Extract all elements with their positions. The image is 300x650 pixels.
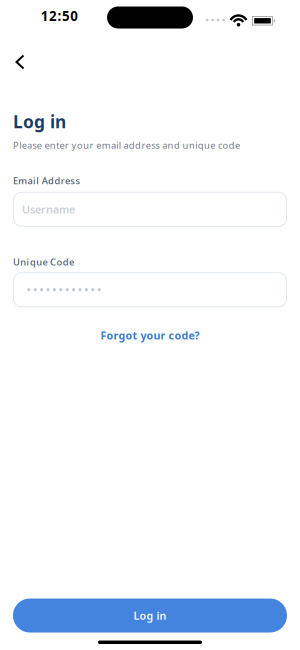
staticText: Log in bbox=[13, 110, 66, 133]
button[interactable]: Back bbox=[0, 44, 40, 80]
staticText: 12:50 bbox=[41, 7, 78, 25]
staticText: Unique Code bbox=[13, 256, 74, 268]
staticText: Email Address bbox=[13, 174, 81, 187]
staticText: Please enter your email address and uniq… bbox=[13, 139, 240, 151]
staticText: Log in bbox=[133, 608, 166, 623]
staticText: Username bbox=[22, 202, 75, 216]
button[interactable]: Forgot your code? bbox=[100, 328, 199, 342]
staticText: Forgot your code? bbox=[100, 328, 199, 342]
button[interactable]: Log in bbox=[13, 598, 287, 632]
